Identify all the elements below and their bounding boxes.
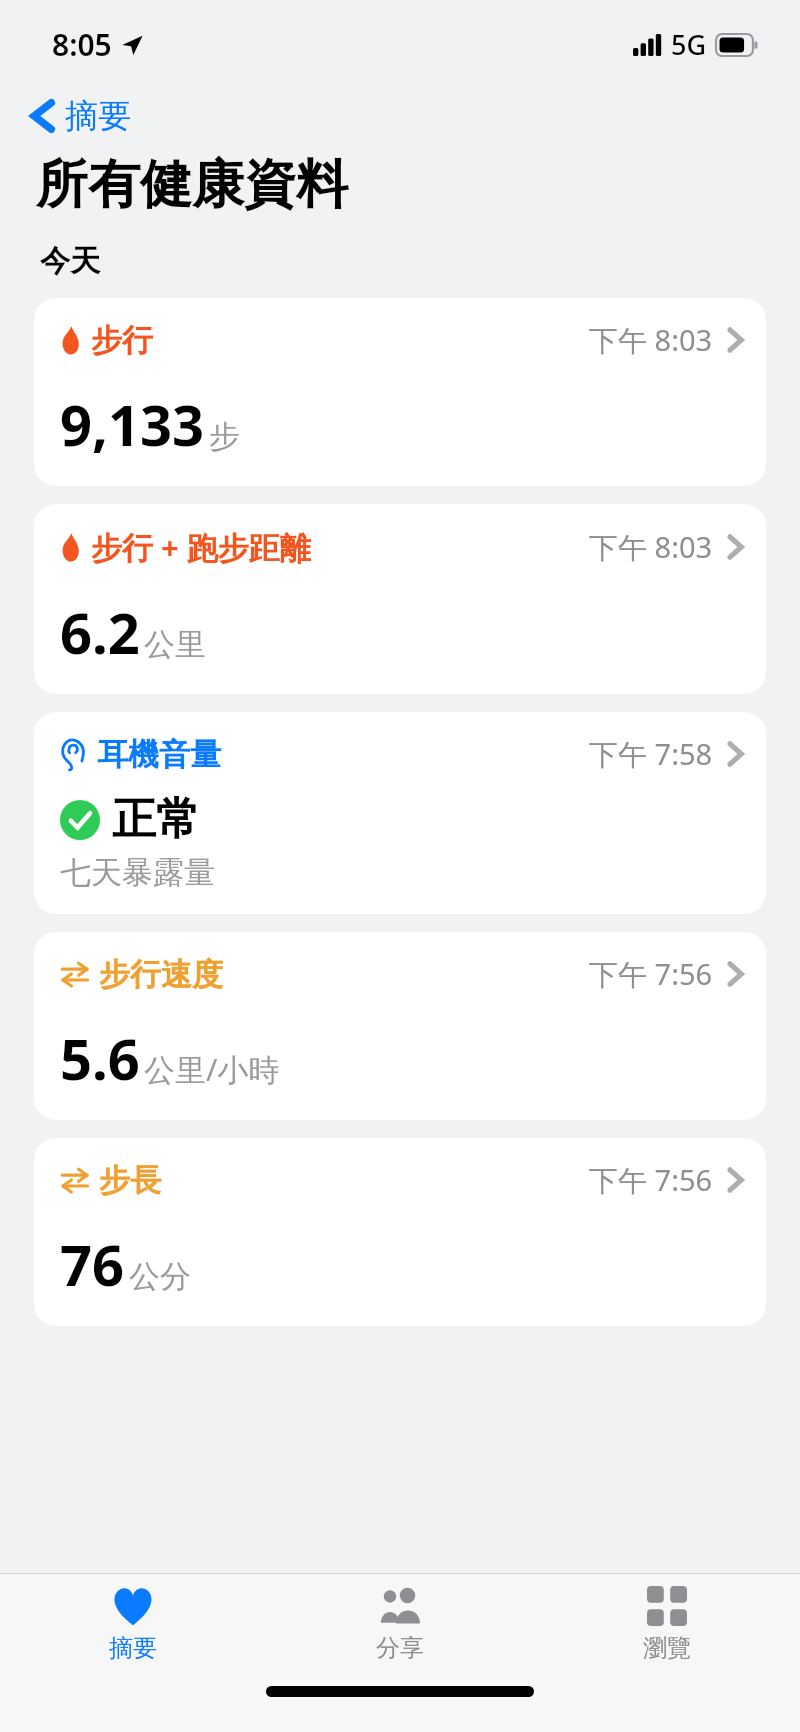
button[interactable]: 步長 bbox=[34, 1138, 766, 1326]
staticText: 七天暴露量 bbox=[60, 853, 215, 892]
staticText: 步行速度 bbox=[99, 955, 223, 994]
button[interactable]: 耳機音量 bbox=[34, 712, 766, 914]
staticText: 分享 bbox=[376, 1633, 424, 1663]
staticText: 下午 8:03 bbox=[589, 527, 713, 567]
staticText: 摘要 bbox=[65, 95, 131, 137]
other: 分享 bbox=[375, 1586, 425, 1626]
staticText: 76 bbox=[60, 1226, 125, 1302]
staticText: 公里/小時 bbox=[144, 1048, 280, 1090]
staticText: 6.2 bbox=[60, 594, 140, 670]
other: 摘要 bbox=[111, 1586, 155, 1626]
staticText: 下午 7:56 bbox=[589, 954, 713, 994]
button[interactable]: 摘要 bbox=[22, 88, 139, 144]
staticText: 步行 bbox=[91, 321, 153, 360]
staticText: 所有健康資料 bbox=[36, 152, 348, 218]
button[interactable]: 分享 bbox=[266, 1574, 533, 1674]
staticText: 下午 7:56 bbox=[589, 1160, 713, 1200]
button[interactable]: 步行 bbox=[34, 298, 766, 486]
button[interactable]: 摘要 bbox=[0, 1574, 266, 1674]
staticText: 步 bbox=[209, 417, 240, 456]
staticText: 耳機音量 bbox=[97, 735, 221, 774]
staticText: 步長 bbox=[99, 1161, 161, 1200]
staticText: 5.6 bbox=[60, 1020, 140, 1096]
staticText: 下午 7:58 bbox=[589, 734, 713, 774]
staticText: 8:05 bbox=[52, 24, 112, 65]
staticText: 9,133 bbox=[60, 386, 205, 462]
staticText: 今天 bbox=[40, 242, 100, 280]
staticText: 步行 + 跑步距離 bbox=[91, 526, 311, 568]
staticText: 公分 bbox=[129, 1257, 191, 1296]
staticText: 摘要 bbox=[109, 1633, 157, 1663]
staticText: 瀏覽 bbox=[643, 1633, 691, 1663]
staticText: 5G bbox=[671, 26, 707, 63]
staticText: 正常 bbox=[112, 792, 200, 847]
button[interactable]: 步行 + 跑步距離 bbox=[34, 504, 766, 694]
button[interactable]: 步行速度 bbox=[34, 932, 766, 1120]
other: 瀏覽 bbox=[647, 1586, 687, 1626]
staticText: 公里 bbox=[144, 625, 206, 664]
button[interactable]: 瀏覽 bbox=[533, 1574, 800, 1674]
staticText: 下午 8:03 bbox=[589, 320, 713, 360]
